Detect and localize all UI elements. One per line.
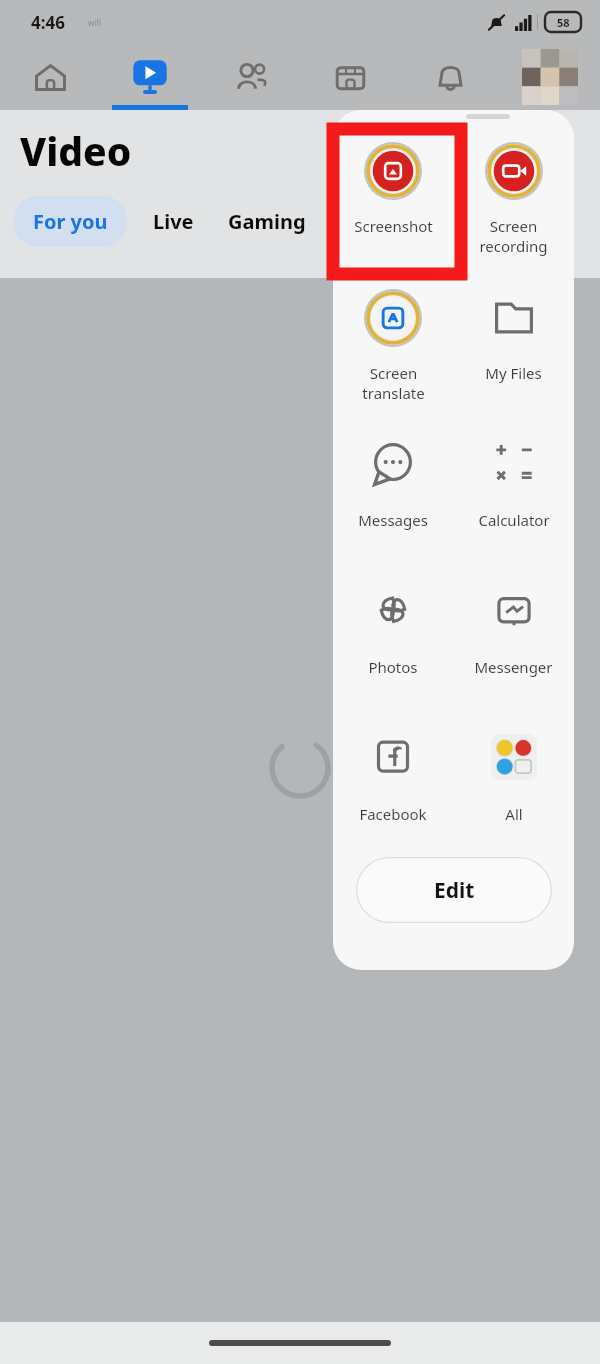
staticText: Screenshot [354,216,433,236]
button[interactable]: Screen recording [453,122,574,269]
button[interactable]: Messenger [453,563,574,710]
button[interactable]: Follow [314,196,415,247]
staticText: Messages [358,510,428,530]
staticText: Follow [332,208,397,235]
staticText: 4:46 [31,11,65,34]
button[interactable]: Live [127,196,220,247]
button[interactable]: Gaming [220,196,314,247]
button[interactable]: Calculator [453,416,574,563]
button[interactable]: Screen translate [333,269,453,416]
button[interactable]: Screenshot [333,122,453,269]
staticText: For you [33,208,108,235]
button[interactable]: My Files [453,269,574,416]
staticText: Photos [368,657,418,677]
staticText: Facebook [359,804,427,824]
button[interactable]: Messages [333,416,453,563]
button[interactable]: Facebook [333,710,453,857]
staticText: 58 [557,15,570,30]
button[interactable]: Profile [522,49,578,105]
button[interactable]: Notifications [424,51,476,103]
staticText: Messenger [474,657,553,677]
button[interactable]: Photos [333,563,453,710]
staticText: Video [20,124,132,177]
button[interactable]: Friends [224,51,276,103]
button[interactable]: Marketplace [324,51,376,103]
button[interactable]: Home [24,51,76,103]
button[interactable]: Video [123,50,177,104]
button[interactable]: Edit [356,857,552,923]
staticText: Screen recording [479,216,548,256]
staticText: Screen translate [362,363,425,403]
staticText: All [505,804,523,824]
staticText: Calculator [478,510,550,530]
button[interactable]: All [453,710,574,857]
staticText: My Files [485,363,542,383]
staticText: Edit [434,876,475,905]
staticText: Live [153,208,194,235]
staticText: Gaming [228,208,306,235]
staticText: wifi [88,17,102,28]
button[interactable]: For you [14,196,127,247]
